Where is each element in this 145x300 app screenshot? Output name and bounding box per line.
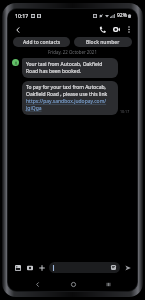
staticText: To pay for your taxi from Autocab, Oakfi… (26, 84, 114, 112)
button[interactable]: To pay for your taxi from Autocab, Oakfi… (22, 81, 118, 115)
button[interactable]: Your taxi from Autocab, Oakfield Road ha… (22, 58, 118, 78)
staticText: 92% (117, 12, 127, 19)
button[interactable]: Add attachment (36, 262, 47, 273)
button[interactable]: Send (122, 262, 133, 273)
button[interactable]: Add to contacts (13, 37, 70, 47)
button[interactable]: Gallery (12, 262, 23, 273)
staticText: Add to contacts (23, 39, 61, 46)
button[interactable]: Recent apps (101, 277, 115, 291)
button[interactable]: Camera (24, 262, 35, 273)
button[interactable]: Block number (74, 37, 132, 47)
staticText: Your taxi from Autocab, Oakfield Road ha… (26, 61, 114, 75)
button[interactable]: Back (30, 277, 44, 291)
button[interactable]: More options (123, 24, 134, 35)
staticText: 10:17 (120, 109, 130, 114)
staticText: Friday, 22 October 2021 (48, 49, 97, 55)
button[interactable]: Home (66, 277, 80, 291)
button[interactable]: Video call (110, 23, 123, 36)
button[interactable]: Call (96, 23, 109, 36)
button[interactable] (49, 262, 120, 273)
button[interactable]: Back (11, 23, 24, 36)
staticText: Block number (86, 39, 120, 46)
staticText: 10:17 (15, 12, 29, 19)
